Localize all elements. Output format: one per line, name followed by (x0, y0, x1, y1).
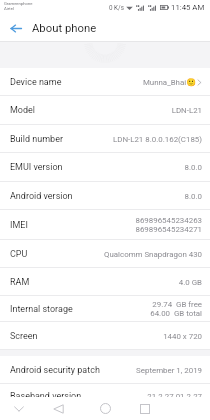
staticText: 869896545234263 (135, 216, 202, 225)
staticText: 8.0.0 (184, 192, 202, 201)
button[interactable]: Recent apps (131, 397, 159, 420)
button[interactable]: Home (91, 397, 119, 420)
button[interactable]: EMUI version (0, 153, 210, 182)
staticText: 21.2.27.01.2.27 (147, 392, 202, 397)
button[interactable]: Android version (0, 182, 210, 210)
staticText: 1440 x 720 (163, 332, 202, 341)
staticText: Android security patch (10, 365, 100, 376)
button[interactable]: Build number (0, 125, 210, 153)
staticText: Airtel (4, 6, 14, 11)
staticText: Grameenphone (4, 1, 33, 6)
button[interactable]: Hide navigation bar (0, 397, 38, 420)
staticText: CPU (10, 249, 28, 260)
staticText: 8.0.0 (184, 163, 202, 172)
staticText: RAM (10, 277, 30, 288)
staticText: About phone (32, 22, 97, 35)
button[interactable]: Screen (0, 322, 210, 350)
staticText: LDN-L21 (171, 106, 202, 115)
staticText: 4.0 GB (178, 278, 202, 287)
staticText: Android version (10, 191, 73, 202)
staticText: 0 K/s (109, 4, 124, 11)
staticText: Internal storage (10, 304, 73, 315)
button[interactable]: Android security patch (0, 356, 210, 384)
staticText: EMUI version (10, 162, 63, 173)
button[interactable]: CPU (0, 240, 210, 268)
button[interactable]: Device name (0, 68, 210, 96)
button[interactable]: Back (44, 397, 72, 420)
button[interactable]: Internal storage (0, 296, 210, 322)
staticText: IMEI (10, 220, 28, 231)
staticText: Model (10, 105, 36, 116)
button[interactable]: Model (0, 96, 210, 125)
button[interactable]: RAM (0, 268, 210, 296)
staticText: 11:45 AM (171, 3, 205, 12)
staticText: 869896545234271 (135, 225, 202, 234)
staticText: Screen (10, 331, 38, 342)
staticText: 64.00 GB total (150, 309, 202, 318)
button[interactable]: IMEI (0, 210, 210, 240)
staticText: Qualcomm Snapdragon 430 (104, 250, 202, 259)
button[interactable]: Baseband version (10, 390, 202, 397)
staticText: September 1, 2019 (136, 366, 202, 375)
staticText: LDN-L21 8.0.0.162(C185) (112, 135, 202, 144)
staticText: Munna_Bhai🙂 (142, 78, 196, 87)
staticText: Device name (10, 77, 62, 88)
button[interactable]: Back (5, 14, 27, 42)
staticText: Baseband version (10, 391, 82, 397)
staticText: 29.74 GB free (152, 300, 202, 309)
staticText: Build number (10, 134, 63, 145)
